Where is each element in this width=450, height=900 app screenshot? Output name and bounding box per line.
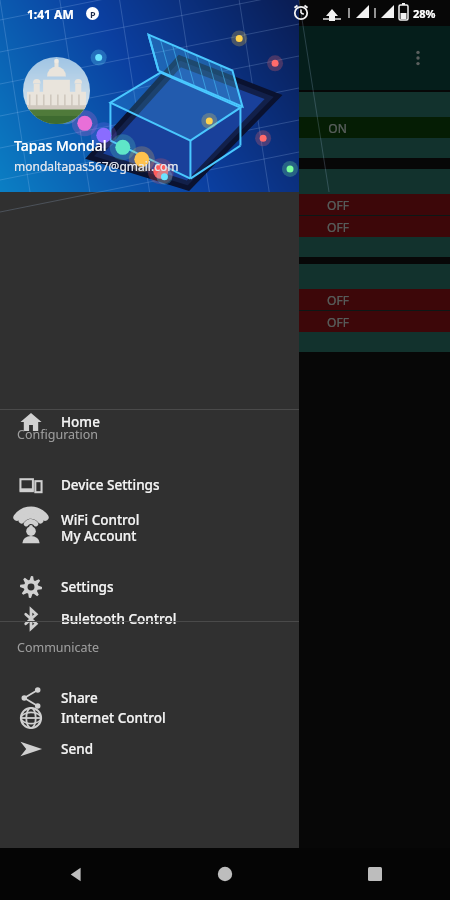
- staticText: Share: [61, 689, 98, 707]
- staticText: Tapas Mondal: [14, 136, 107, 155]
- staticText: Communicate: [17, 639, 100, 656]
- button[interactable]: Home: [0, 398, 299, 446]
- button[interactable]: Share: [0, 674, 299, 722]
- staticText: ON: [328, 120, 347, 136]
- button[interactable]: Recent apps: [300, 848, 450, 900]
- staticText: Buletooth Control: [61, 610, 177, 628]
- button[interactable]: WiFi Control: [0, 496, 299, 544]
- button[interactable]: ON: [0, 117, 224, 138]
- button[interactable]: Device Settings: [0, 461, 299, 509]
- staticText: OFF: [327, 292, 349, 308]
- staticText: OFF: [327, 219, 349, 235]
- button[interactable]: OFF: [225, 311, 450, 332]
- staticText: OFF: [327, 197, 349, 213]
- staticText: Send: [61, 740, 94, 758]
- staticText: OFF: [327, 314, 349, 330]
- button[interactable]: Back: [0, 848, 150, 900]
- staticText: Device Settings: [61, 476, 160, 494]
- staticText: 1:41 AM: [27, 6, 74, 22]
- staticText: 28%: [413, 6, 436, 21]
- button[interactable]: Send: [0, 725, 299, 773]
- button[interactable]: OFF: [225, 194, 450, 215]
- button[interactable]: Home: [150, 848, 300, 900]
- staticText: mondaltapas567@gmail.com: [14, 158, 179, 174]
- staticText: Internet Control: [61, 709, 166, 727]
- staticText: P: [90, 8, 96, 20]
- staticText: Home: [61, 413, 100, 431]
- staticText: Configuration: [17, 426, 99, 443]
- button[interactable]: More options: [400, 40, 436, 76]
- staticText: ...4C:EC:F6): [8, 96, 75, 114]
- staticText: ... (Not connected): [8, 173, 120, 191]
- staticText: My Account: [61, 527, 137, 545]
- button[interactable]: OFF: [225, 289, 450, 310]
- button[interactable]: OFF: [0, 194, 224, 215]
- button[interactable]: My Account: [0, 512, 299, 560]
- staticText: WiFi Control: [61, 511, 140, 529]
- button[interactable]: OFF: [225, 216, 450, 237]
- button[interactable]: Buletooth Control: [0, 595, 299, 643]
- button[interactable]: Settings: [0, 563, 299, 611]
- button[interactable]: ON: [225, 117, 450, 138]
- staticText: Settings: [61, 578, 114, 596]
- staticText: TEMPERATURE: 56.67°C: [8, 141, 129, 156]
- button[interactable]: Internet Control: [0, 694, 299, 742]
- staticText: ON: [103, 120, 122, 136]
